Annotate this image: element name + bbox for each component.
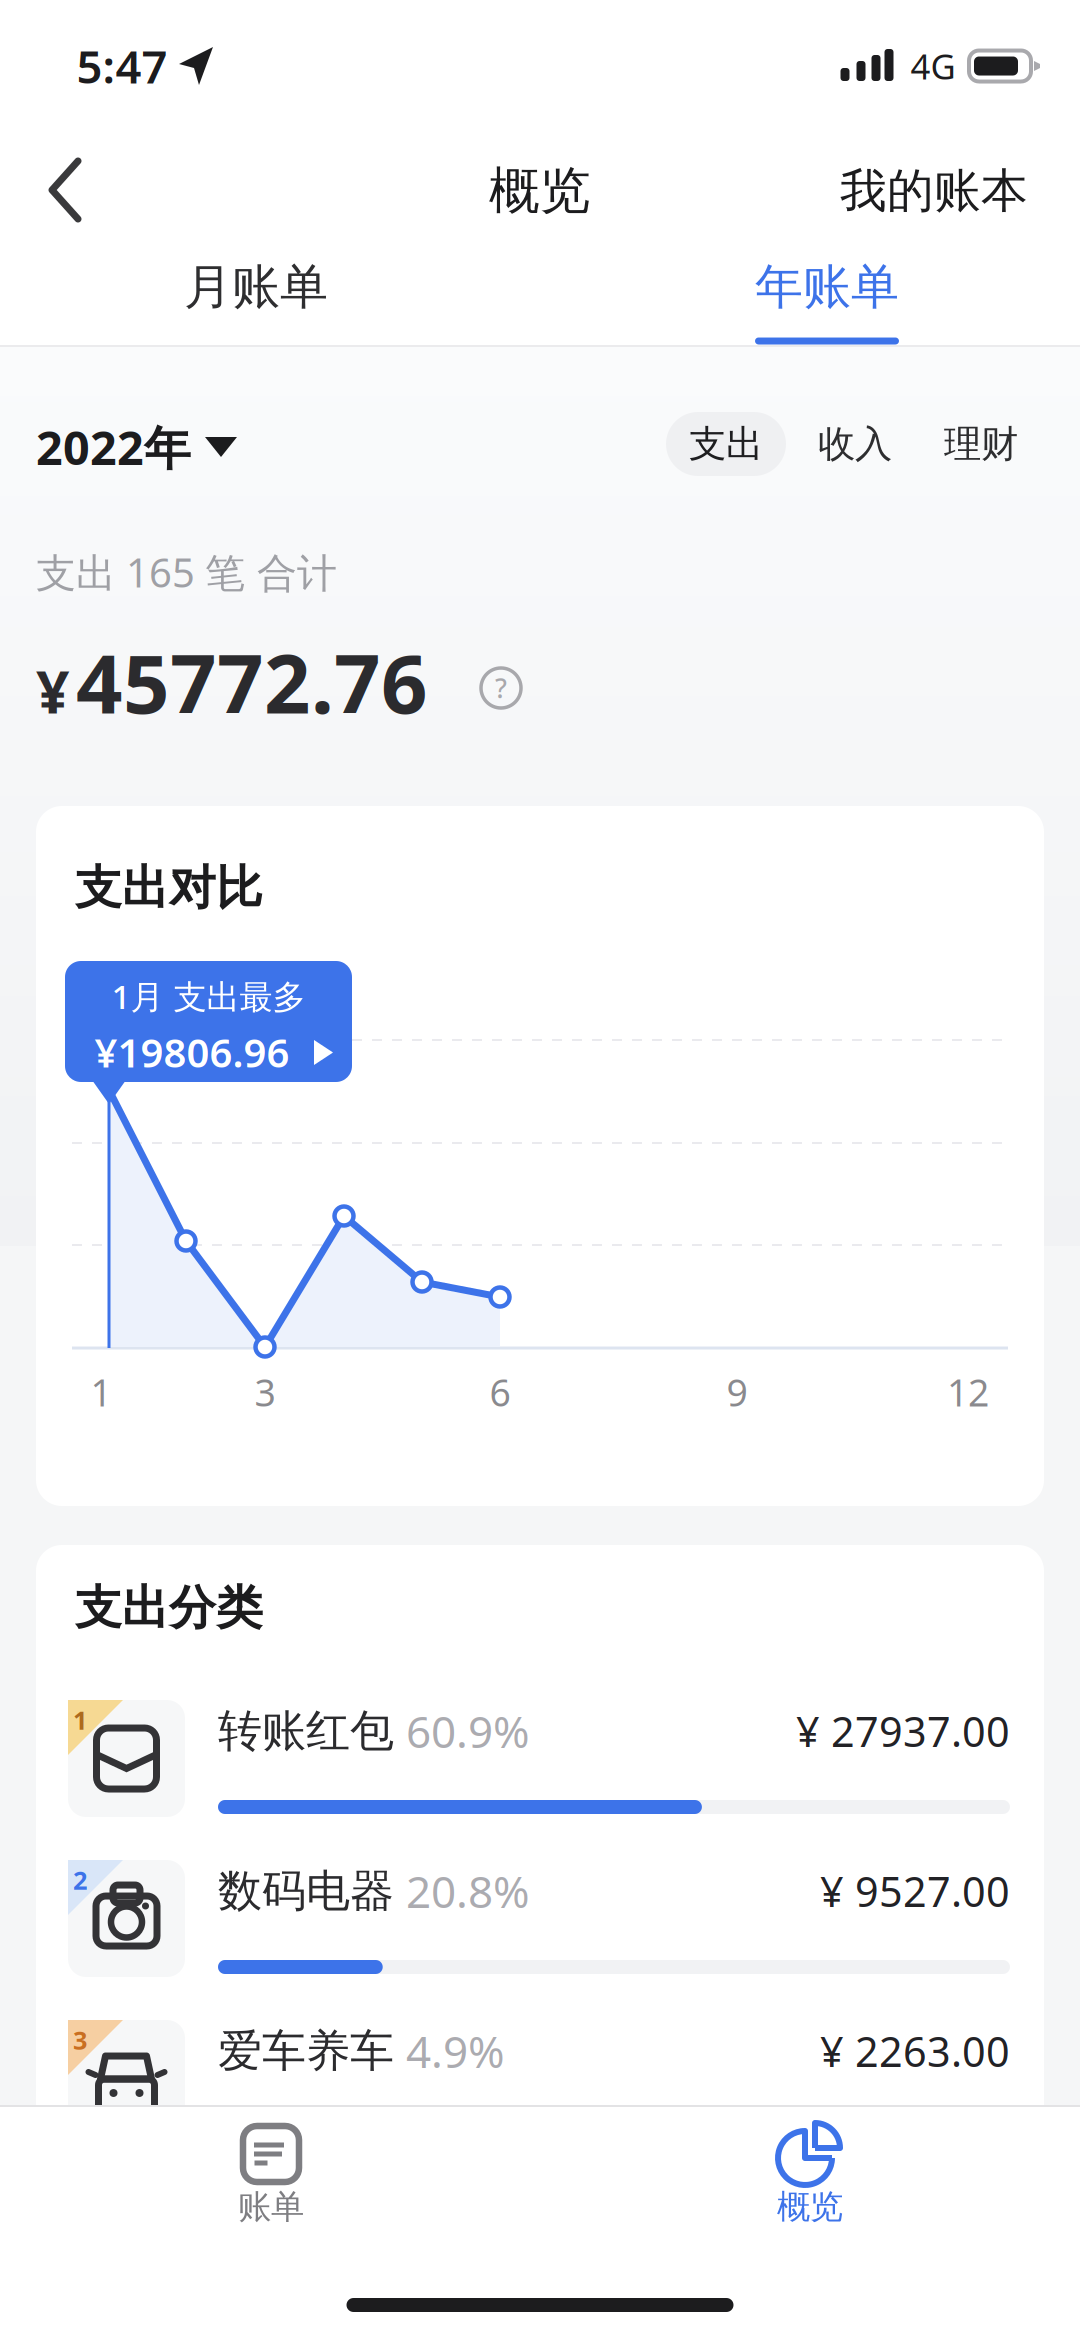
staticText: 我的账本 <box>840 162 1028 220</box>
staticText: 1月 支出最多 <box>111 974 305 1018</box>
staticText: 2 <box>73 1863 87 1897</box>
staticText: 数码电器 <box>218 1864 394 1918</box>
button[interactable]: 收入 <box>800 412 910 476</box>
staticText: ? <box>495 670 507 706</box>
staticText: 4G <box>910 43 955 89</box>
staticText: 1 <box>90 1367 111 1417</box>
staticText: ¥ 9527.00 <box>820 1864 1010 1918</box>
staticText: ¥ <box>36 652 70 730</box>
button[interactable]: Back <box>20 145 110 235</box>
button[interactable]: 2022年 <box>36 412 436 482</box>
staticText: 2022年 <box>36 416 191 478</box>
staticText: 年账单 <box>755 257 899 316</box>
staticText: ¥ 27937.00 <box>796 1704 1010 1758</box>
staticText: 爱车养车 <box>218 2024 394 2078</box>
button[interactable]: 支出 <box>666 412 786 476</box>
staticText: 45772.76 <box>76 628 428 736</box>
button[interactable]: 月账单 <box>106 252 406 322</box>
staticText: 账单 <box>238 2186 304 2227</box>
button[interactable]: 年账单 <box>677 255 977 345</box>
staticText: 支出对比 <box>75 859 263 917</box>
staticText: 6 <box>489 1367 510 1417</box>
button[interactable]: 1月 支出最多 <box>65 961 352 1082</box>
button[interactable]: 概览 <box>660 2100 960 2240</box>
button[interactable]: 我的账本 <box>840 162 1028 220</box>
staticText: 收入 <box>818 421 892 467</box>
staticText: 概览 <box>777 2186 843 2227</box>
staticText: 9 <box>726 1367 747 1417</box>
staticText: 月账单 <box>184 257 328 316</box>
staticText: 5:47 <box>76 36 167 96</box>
button[interactable]: 理财 <box>926 412 1036 476</box>
staticText: 4.9% <box>406 2022 505 2080</box>
staticText: ¥ 2263.00 <box>820 2024 1010 2078</box>
staticText: 20.8% <box>406 1862 530 1920</box>
staticText: 1 <box>73 1703 87 1737</box>
staticText: ¥19806.96 <box>94 1025 289 1078</box>
staticText: 12 <box>947 1367 989 1417</box>
staticText: 概览 <box>489 160 591 222</box>
staticText: 3 <box>73 2023 87 2057</box>
staticText: 支出 165 笔 合计 <box>36 545 337 598</box>
staticText: 60.9% <box>406 1702 530 1760</box>
staticText: 理财 <box>944 421 1018 467</box>
button[interactable]: Help <box>473 660 529 716</box>
staticText: 转账红包 <box>218 1704 394 1758</box>
staticText: 支出 <box>689 421 763 467</box>
staticText: 3 <box>254 1367 275 1417</box>
button[interactable]: 账单 <box>121 2100 421 2240</box>
staticText: 支出分类 <box>75 1579 263 1637</box>
